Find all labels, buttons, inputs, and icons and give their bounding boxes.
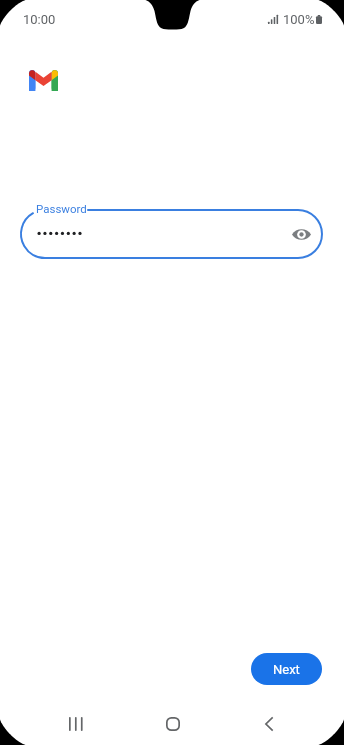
button[interactable]: Next: [251, 653, 322, 685]
button[interactable]: Back: [245, 700, 293, 745]
staticText: 10:00: [23, 12, 56, 27]
staticText: Password: [36, 202, 87, 215]
button[interactable]: Recent apps: [52, 700, 100, 745]
staticText: 100%: [283, 12, 315, 27]
button[interactable]: Home: [149, 700, 197, 745]
button[interactable]: Show password: [288, 221, 314, 247]
staticText: Next: [273, 662, 300, 677]
